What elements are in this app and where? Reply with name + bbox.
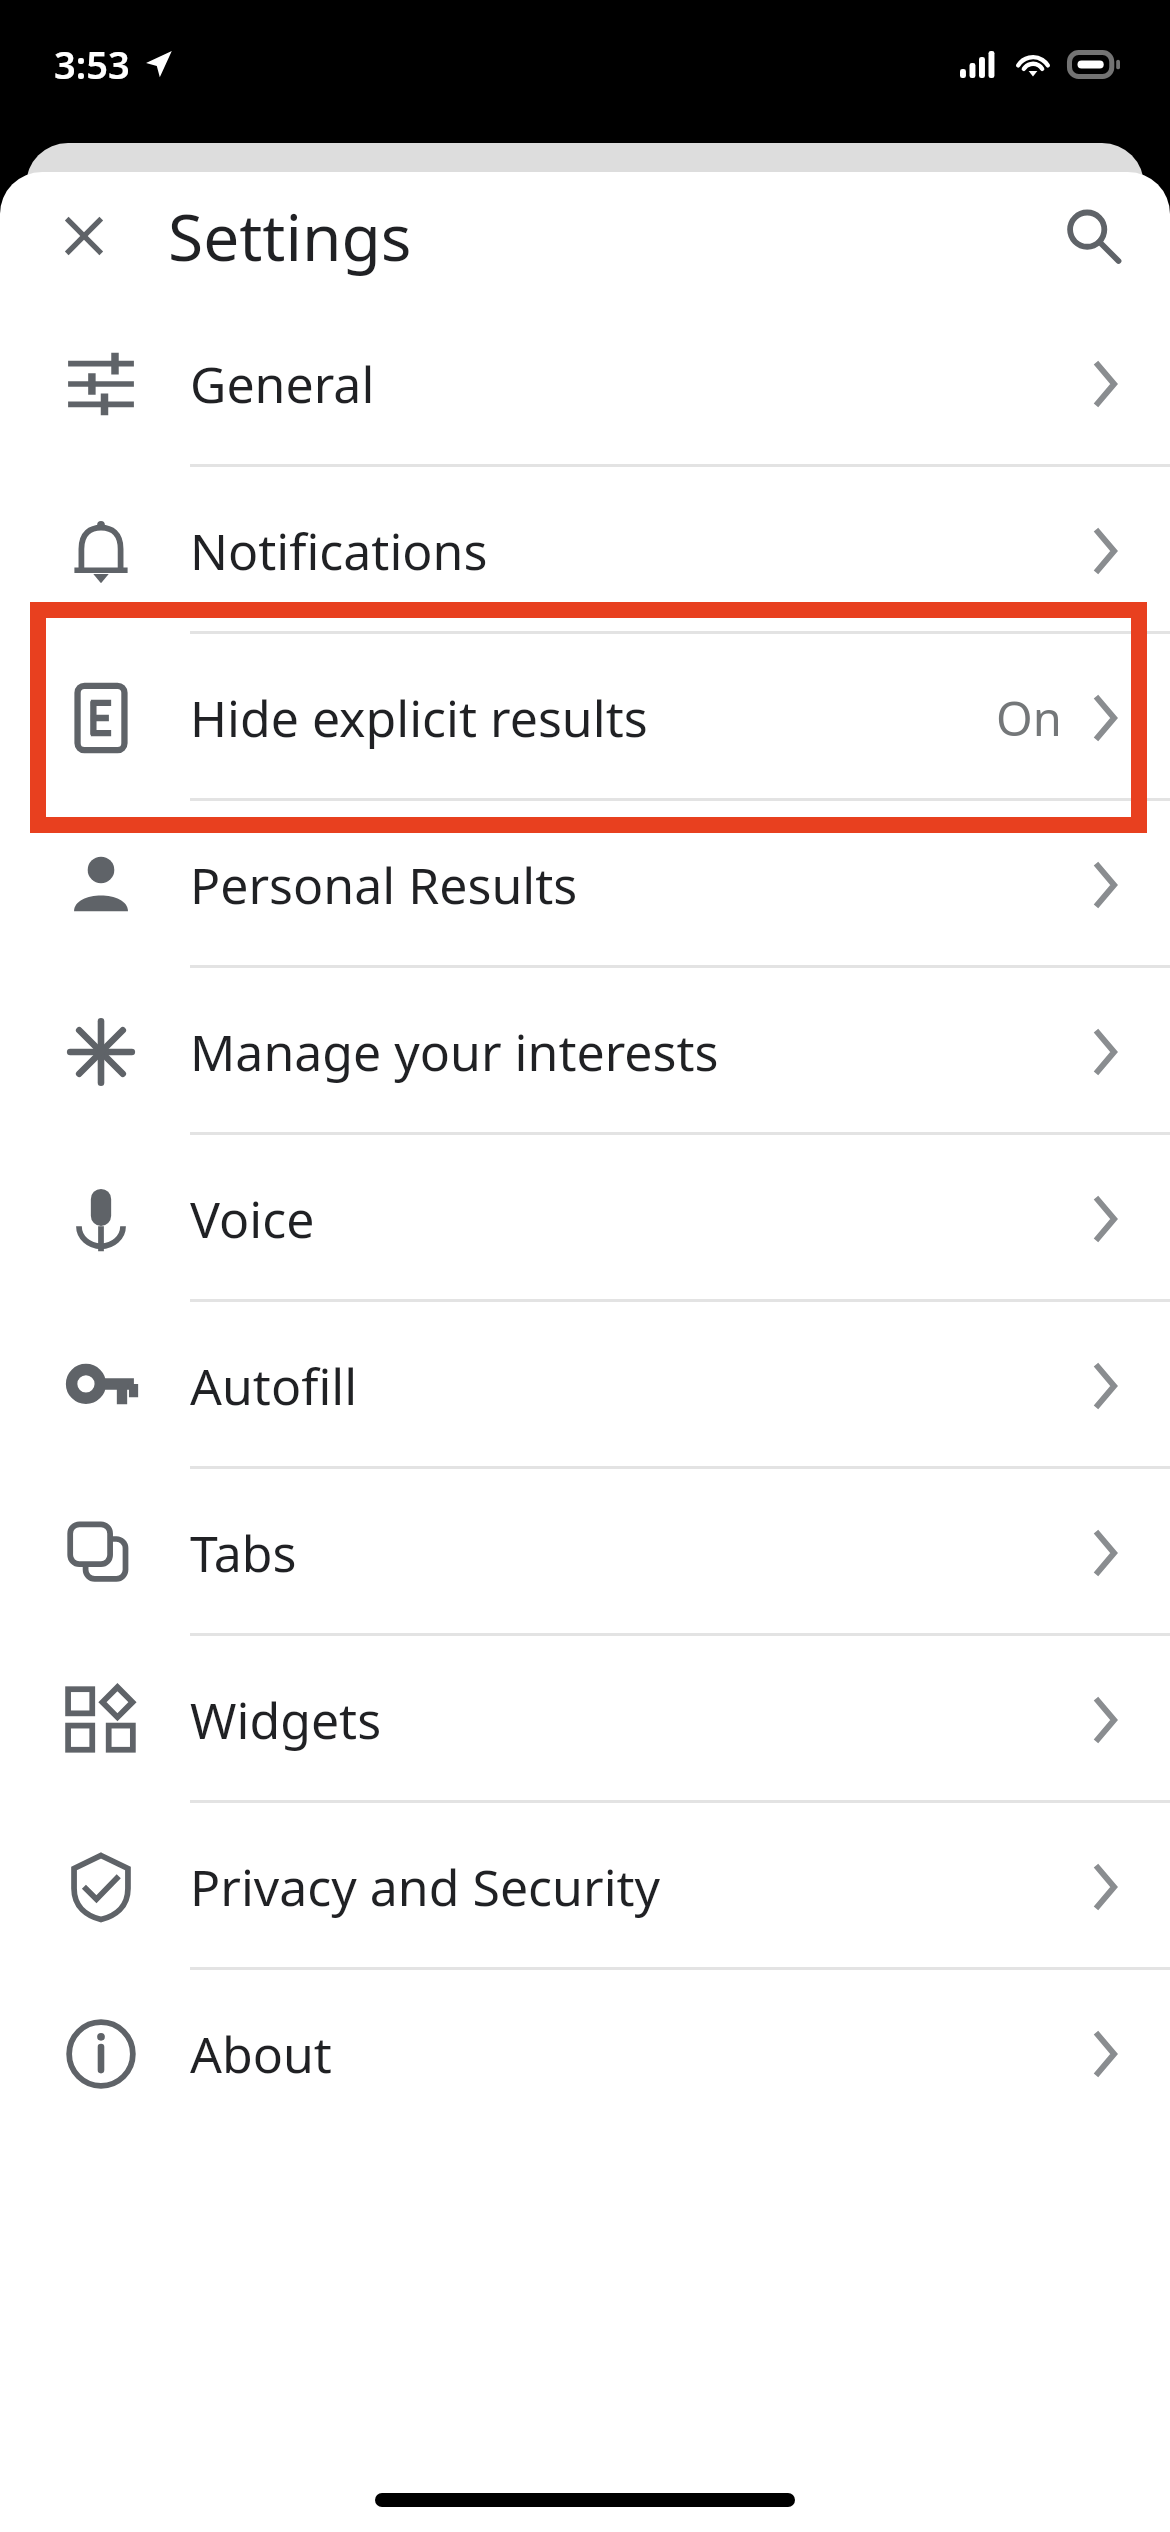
staticText: Tabs — [190, 1519, 1092, 1587]
staticText: On — [996, 686, 1062, 750]
staticText: Autofill — [190, 1352, 1092, 1420]
button[interactable]: Tabs — [0, 1469, 1170, 1636]
staticText: Widgets — [190, 1686, 1092, 1754]
staticText: Manage your interests — [190, 1018, 1092, 1086]
staticText: Settings — [168, 193, 412, 280]
button[interactable]: Privacy and Security — [0, 1803, 1170, 1970]
staticText: Hide explicit results — [190, 684, 996, 752]
button[interactable]: Personal Results — [0, 801, 1170, 968]
button[interactable]: Manage your interests — [0, 968, 1170, 1135]
staticText: About — [190, 2020, 1092, 2088]
staticText: Privacy and Security — [190, 1853, 1092, 1921]
button[interactable]: About — [0, 1970, 1170, 2137]
staticText: 3:53 — [54, 38, 130, 90]
button[interactable]: Voice — [0, 1135, 1170, 1302]
button[interactable]: Search — [1044, 187, 1142, 285]
button[interactable]: Hide explicit results — [0, 634, 1170, 801]
staticText: General — [190, 350, 1092, 418]
button[interactable]: Autofill — [0, 1302, 1170, 1469]
staticText: Personal Results — [190, 851, 1092, 919]
button[interactable]: Notifications — [0, 467, 1170, 634]
button[interactable]: Close — [38, 190, 130, 282]
button[interactable]: Widgets — [0, 1636, 1170, 1803]
staticText: Notifications — [190, 517, 1092, 585]
staticText: Voice — [190, 1185, 1092, 1253]
button[interactable]: General — [0, 300, 1170, 467]
